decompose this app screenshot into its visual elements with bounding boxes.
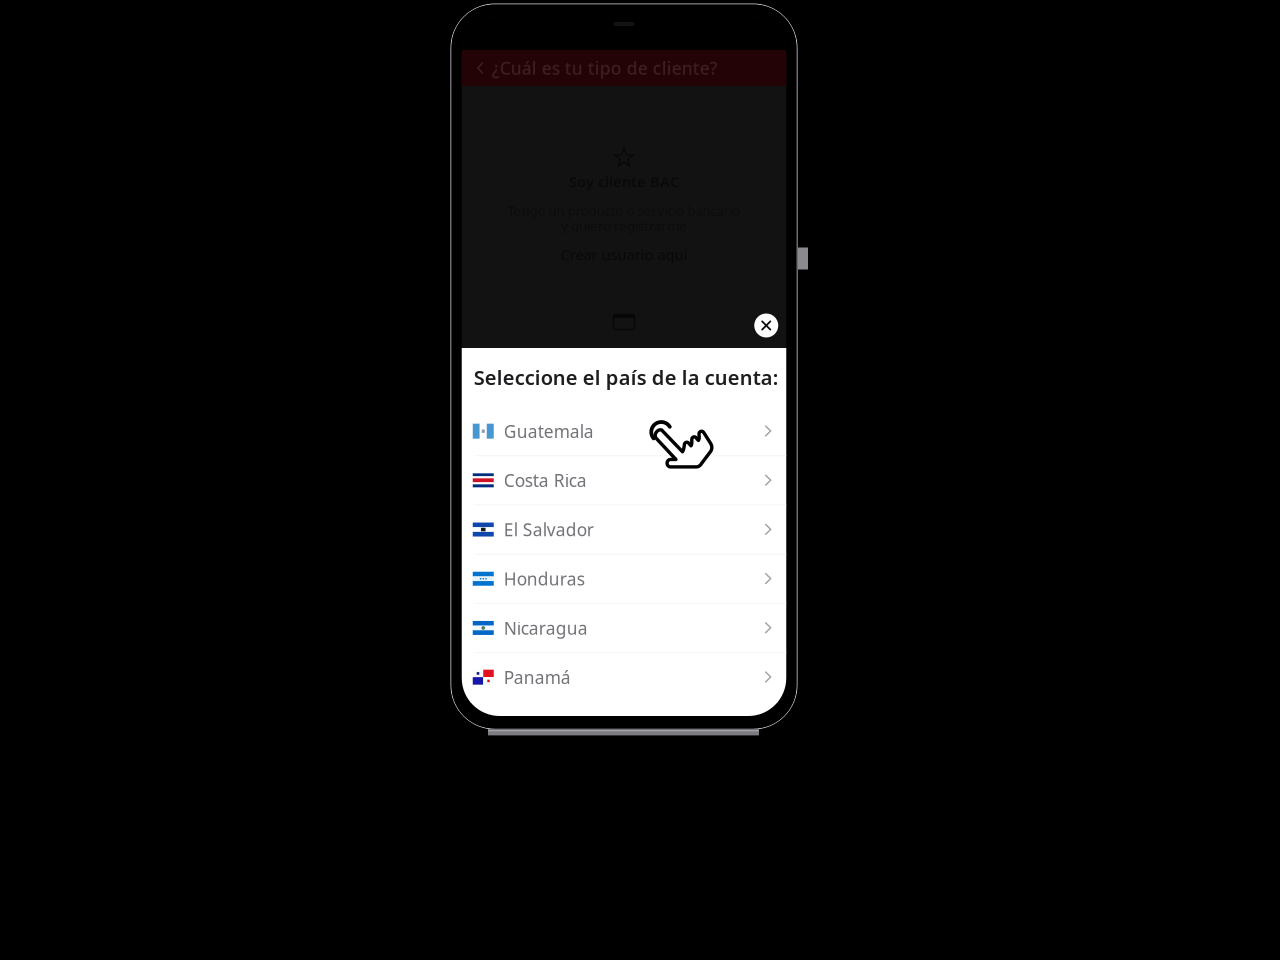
button[interactable]: Close xyxy=(754,313,778,337)
staticText: Guatemala xyxy=(504,420,594,443)
button[interactable]: Panamá xyxy=(462,653,786,702)
button[interactable]: El Salvador xyxy=(462,505,786,555)
staticText: No soy cliente BAC xyxy=(557,346,691,365)
button[interactable]: Costa Rica xyxy=(462,456,786,505)
staticText: ¿Cuál es tu tipo de cliente? xyxy=(492,56,718,79)
button[interactable]: No soy cliente BAC xyxy=(462,262,786,364)
staticText: Panamá xyxy=(504,666,571,689)
staticText: Seleccione el país de la cuenta: xyxy=(474,364,779,391)
staticText: Costa Rica xyxy=(504,469,587,492)
button[interactable]: Guatemala xyxy=(462,407,786,456)
staticText: El Salvador xyxy=(504,518,594,541)
staticText: Soy cliente BAC xyxy=(569,172,679,191)
button[interactable]: Nicaragua xyxy=(462,604,786,653)
staticText: Nicaragua xyxy=(504,616,588,639)
staticText: Honduras xyxy=(504,567,585,590)
button[interactable]: Back xyxy=(477,61,492,74)
button[interactable]: Honduras xyxy=(462,555,786,604)
